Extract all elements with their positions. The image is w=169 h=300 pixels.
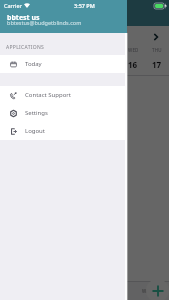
- staticText: There are no appointments today: [14, 89, 117, 98]
- button[interactable]: Contact Support: [0, 86, 127, 104]
- staticText: Carrier: [4, 2, 22, 9]
- staticText: 17: [152, 59, 162, 70]
- button[interactable]: Next week: [143, 26, 169, 47]
- button[interactable]: Logout: [0, 122, 127, 140]
- staticText: 16: [128, 59, 138, 70]
- staticText: 3:57 PM: [74, 2, 95, 9]
- button[interactable]: WED: [121, 47, 145, 70]
- staticText: bbtest us: [7, 13, 40, 23]
- staticText: 12: [32, 59, 42, 70]
- staticText: bbtestus@budgetblinds.com: [7, 19, 82, 26]
- staticText: THU: [152, 47, 162, 53]
- staticText: 11: [8, 59, 18, 70]
- staticText: Settings: [25, 109, 48, 117]
- button[interactable]: Today: [0, 55, 127, 73]
- staticText: December 2020: [26, 32, 143, 42]
- button[interactable]: SAT: [25, 47, 49, 70]
- staticText: WED: [128, 47, 139, 53]
- button[interactable]: FRI: [0, 47, 25, 70]
- button[interactable]: MON: [73, 47, 97, 70]
- staticText: SAT: [33, 47, 42, 53]
- button[interactable]: TUE: [97, 47, 121, 70]
- staticText: Week: [142, 288, 154, 294]
- button[interactable]: Month: [85, 282, 127, 300]
- button[interactable]: Add appointment: [146, 279, 169, 300]
- button[interactable]: Settings: [0, 104, 127, 122]
- staticText: Contact Support: [25, 91, 71, 99]
- button[interactable]: THU: [145, 47, 169, 70]
- staticText: FRI: [9, 47, 17, 53]
- button[interactable]: Previous week: [0, 26, 26, 47]
- staticText: Logout: [25, 127, 45, 135]
- button[interactable]: SUN: [49, 47, 73, 70]
- staticText: Today: [25, 60, 42, 68]
- staticText: APPLICATIONS: [6, 44, 45, 51]
- button[interactable]: Week: [127, 282, 169, 300]
